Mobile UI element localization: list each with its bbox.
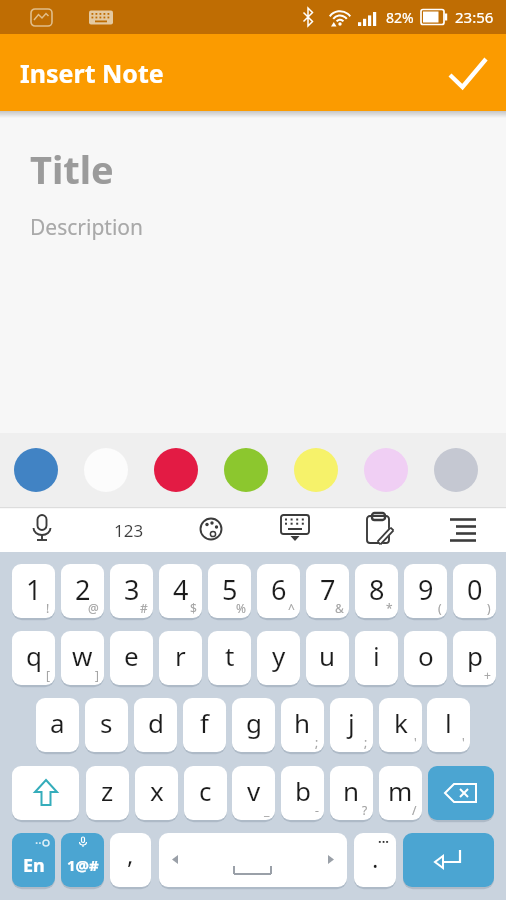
button[interactable] [98,507,154,552]
button[interactable] [350,507,406,552]
staticText: 1@# [67,855,99,875]
button[interactable]: y [257,631,300,685]
staticText: ; [315,734,319,750]
staticText: h [294,705,311,740]
staticText: & [335,600,344,616]
staticText: [ [46,667,50,683]
button[interactable] [434,507,490,552]
button[interactable]: a [36,698,79,752]
button[interactable]: n [330,766,373,820]
button[interactable]: 4 [159,564,202,618]
button[interactable] [364,448,408,492]
button[interactable]: l [427,698,470,752]
button[interactable]: v [232,766,275,820]
button[interactable]: , [110,833,151,887]
staticText: y [272,638,286,673]
staticText: 23:56 [455,7,494,27]
button[interactable]: u [306,631,349,685]
button[interactable]: x [135,766,178,820]
button[interactable]: b [281,766,324,820]
staticText: j [348,705,355,740]
staticText: @ [88,600,99,616]
button[interactable]: 1@# [61,833,104,887]
button[interactable] [294,448,338,492]
button[interactable]: t [208,631,251,685]
staticText: $ [190,600,197,616]
button[interactable]: m [379,766,422,820]
button[interactable] [182,507,238,552]
staticText: % [236,600,246,616]
staticText: ^ [288,600,295,616]
button[interactable]: r [159,631,202,685]
button[interactable]: e [110,631,153,685]
button[interactable]: 5 [208,564,251,618]
staticText: u [319,638,336,673]
button[interactable] [428,766,494,820]
staticText: ... [378,833,389,847]
button[interactable]: 9 [404,564,447,618]
button[interactable] [434,448,478,492]
button[interactable] [14,448,58,492]
staticText: v [247,773,261,808]
staticText: p [467,638,483,673]
staticText: ( [438,600,442,616]
button[interactable] [224,448,268,492]
button[interactable] [159,833,347,887]
button[interactable]: d [134,698,177,752]
button[interactable]: f [183,698,226,752]
staticText: Title [30,143,114,195]
staticText: x [150,773,164,808]
button[interactable] [84,448,128,492]
staticText: w [72,638,93,673]
button[interactable]: z [86,766,129,820]
staticText: z [101,773,114,808]
button[interactable]: 2 [61,564,104,618]
staticText: 0 [467,571,483,608]
button[interactable]: . [354,833,396,887]
staticText: t [225,638,235,673]
button[interactable]: o [404,631,447,685]
button[interactable] [266,507,322,552]
button[interactable]: w [61,631,104,685]
staticText: n [343,773,360,808]
button[interactable]: c [184,766,227,820]
button[interactable]: 3 [110,564,153,618]
staticText: 3 [124,571,140,608]
staticText: d [148,705,164,740]
button[interactable]: h [281,698,324,752]
staticText: c [199,773,212,808]
button[interactable] [440,45,496,101]
staticText: 5 [222,571,238,608]
button[interactable]: s [85,698,128,752]
button[interactable]: q [12,631,55,685]
staticText: ' [462,734,465,750]
button[interactable] [403,833,494,887]
staticText: k [394,705,408,740]
staticText: # [140,600,148,616]
button[interactable]: p [453,631,496,685]
button[interactable]: 6 [257,564,300,618]
button[interactable]: 7 [306,564,349,618]
staticText: s [100,705,113,740]
button[interactable]: i [355,631,398,685]
staticText: 7 [320,571,336,608]
button[interactable]: 0 [453,564,496,618]
staticText: a [50,705,65,740]
staticText: * [386,600,393,616]
button[interactable]: k [379,698,422,752]
button[interactable] [154,448,198,492]
button[interactable]: 1 [12,564,55,618]
button[interactable]: g [232,698,275,752]
staticText: - [315,802,319,818]
button[interactable] [12,766,79,820]
staticText: 123 [114,519,144,542]
staticText: . [372,842,379,875]
button[interactable] [14,507,70,552]
staticText: 9 [418,571,434,608]
button[interactable]: j [330,698,373,752]
staticText: o [418,638,434,673]
staticText: f [200,705,209,740]
button[interactable]: 8 [355,564,398,618]
staticText: ! [46,600,50,616]
button[interactable]: En [12,833,55,887]
